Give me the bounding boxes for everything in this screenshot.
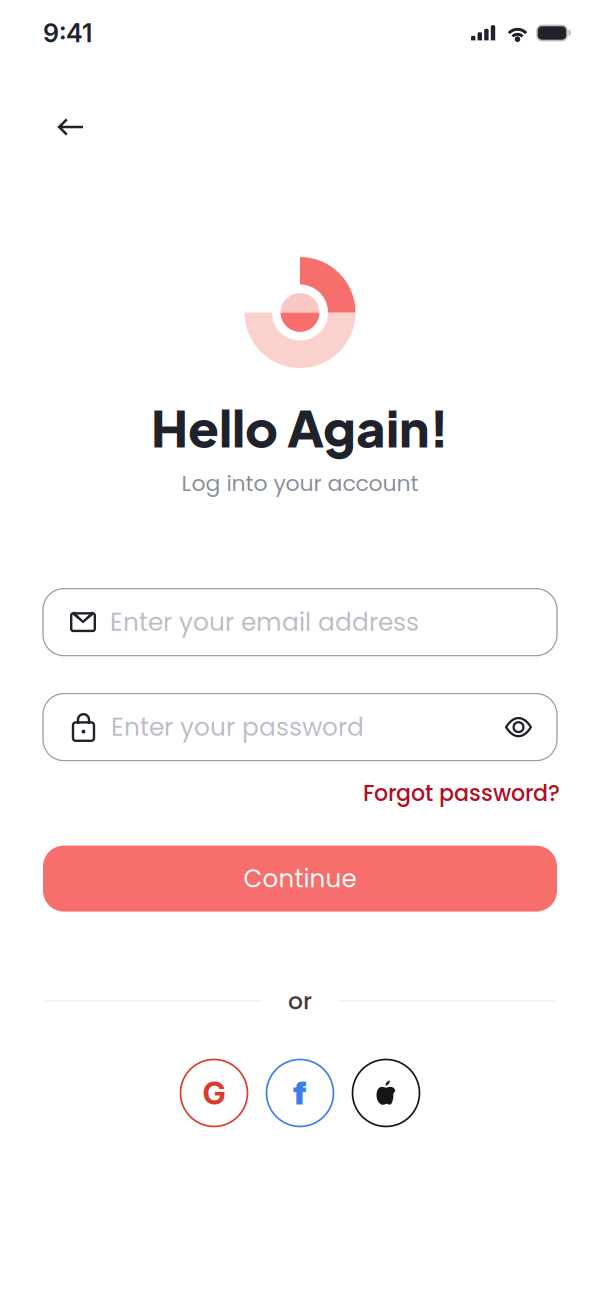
button[interactable]: Sign in with Google: [180, 1059, 247, 1126]
staticText: 9:41: [43, 18, 92, 48]
staticText: Enter your email address: [110, 605, 419, 639]
button[interactable]: Sign in with Facebook: [266, 1059, 333, 1126]
staticText: Enter your password: [111, 710, 364, 744]
button[interactable]: Forgot password?: [363, 778, 560, 809]
button[interactable]: Sign in with Apple: [352, 1059, 419, 1126]
staticText: or: [288, 985, 312, 1017]
staticText: Log into your account: [181, 468, 418, 499]
staticText: f: [293, 1074, 307, 1112]
staticText: Continue: [243, 861, 356, 896]
staticText: Forgot password?: [363, 778, 560, 809]
staticText: G: [202, 1074, 225, 1112]
button[interactable]: Show password: [505, 717, 532, 737]
button[interactable]: Back: [43, 100, 97, 154]
staticText: Hello Again!: [151, 395, 449, 459]
button[interactable]: Continue: [43, 846, 557, 912]
